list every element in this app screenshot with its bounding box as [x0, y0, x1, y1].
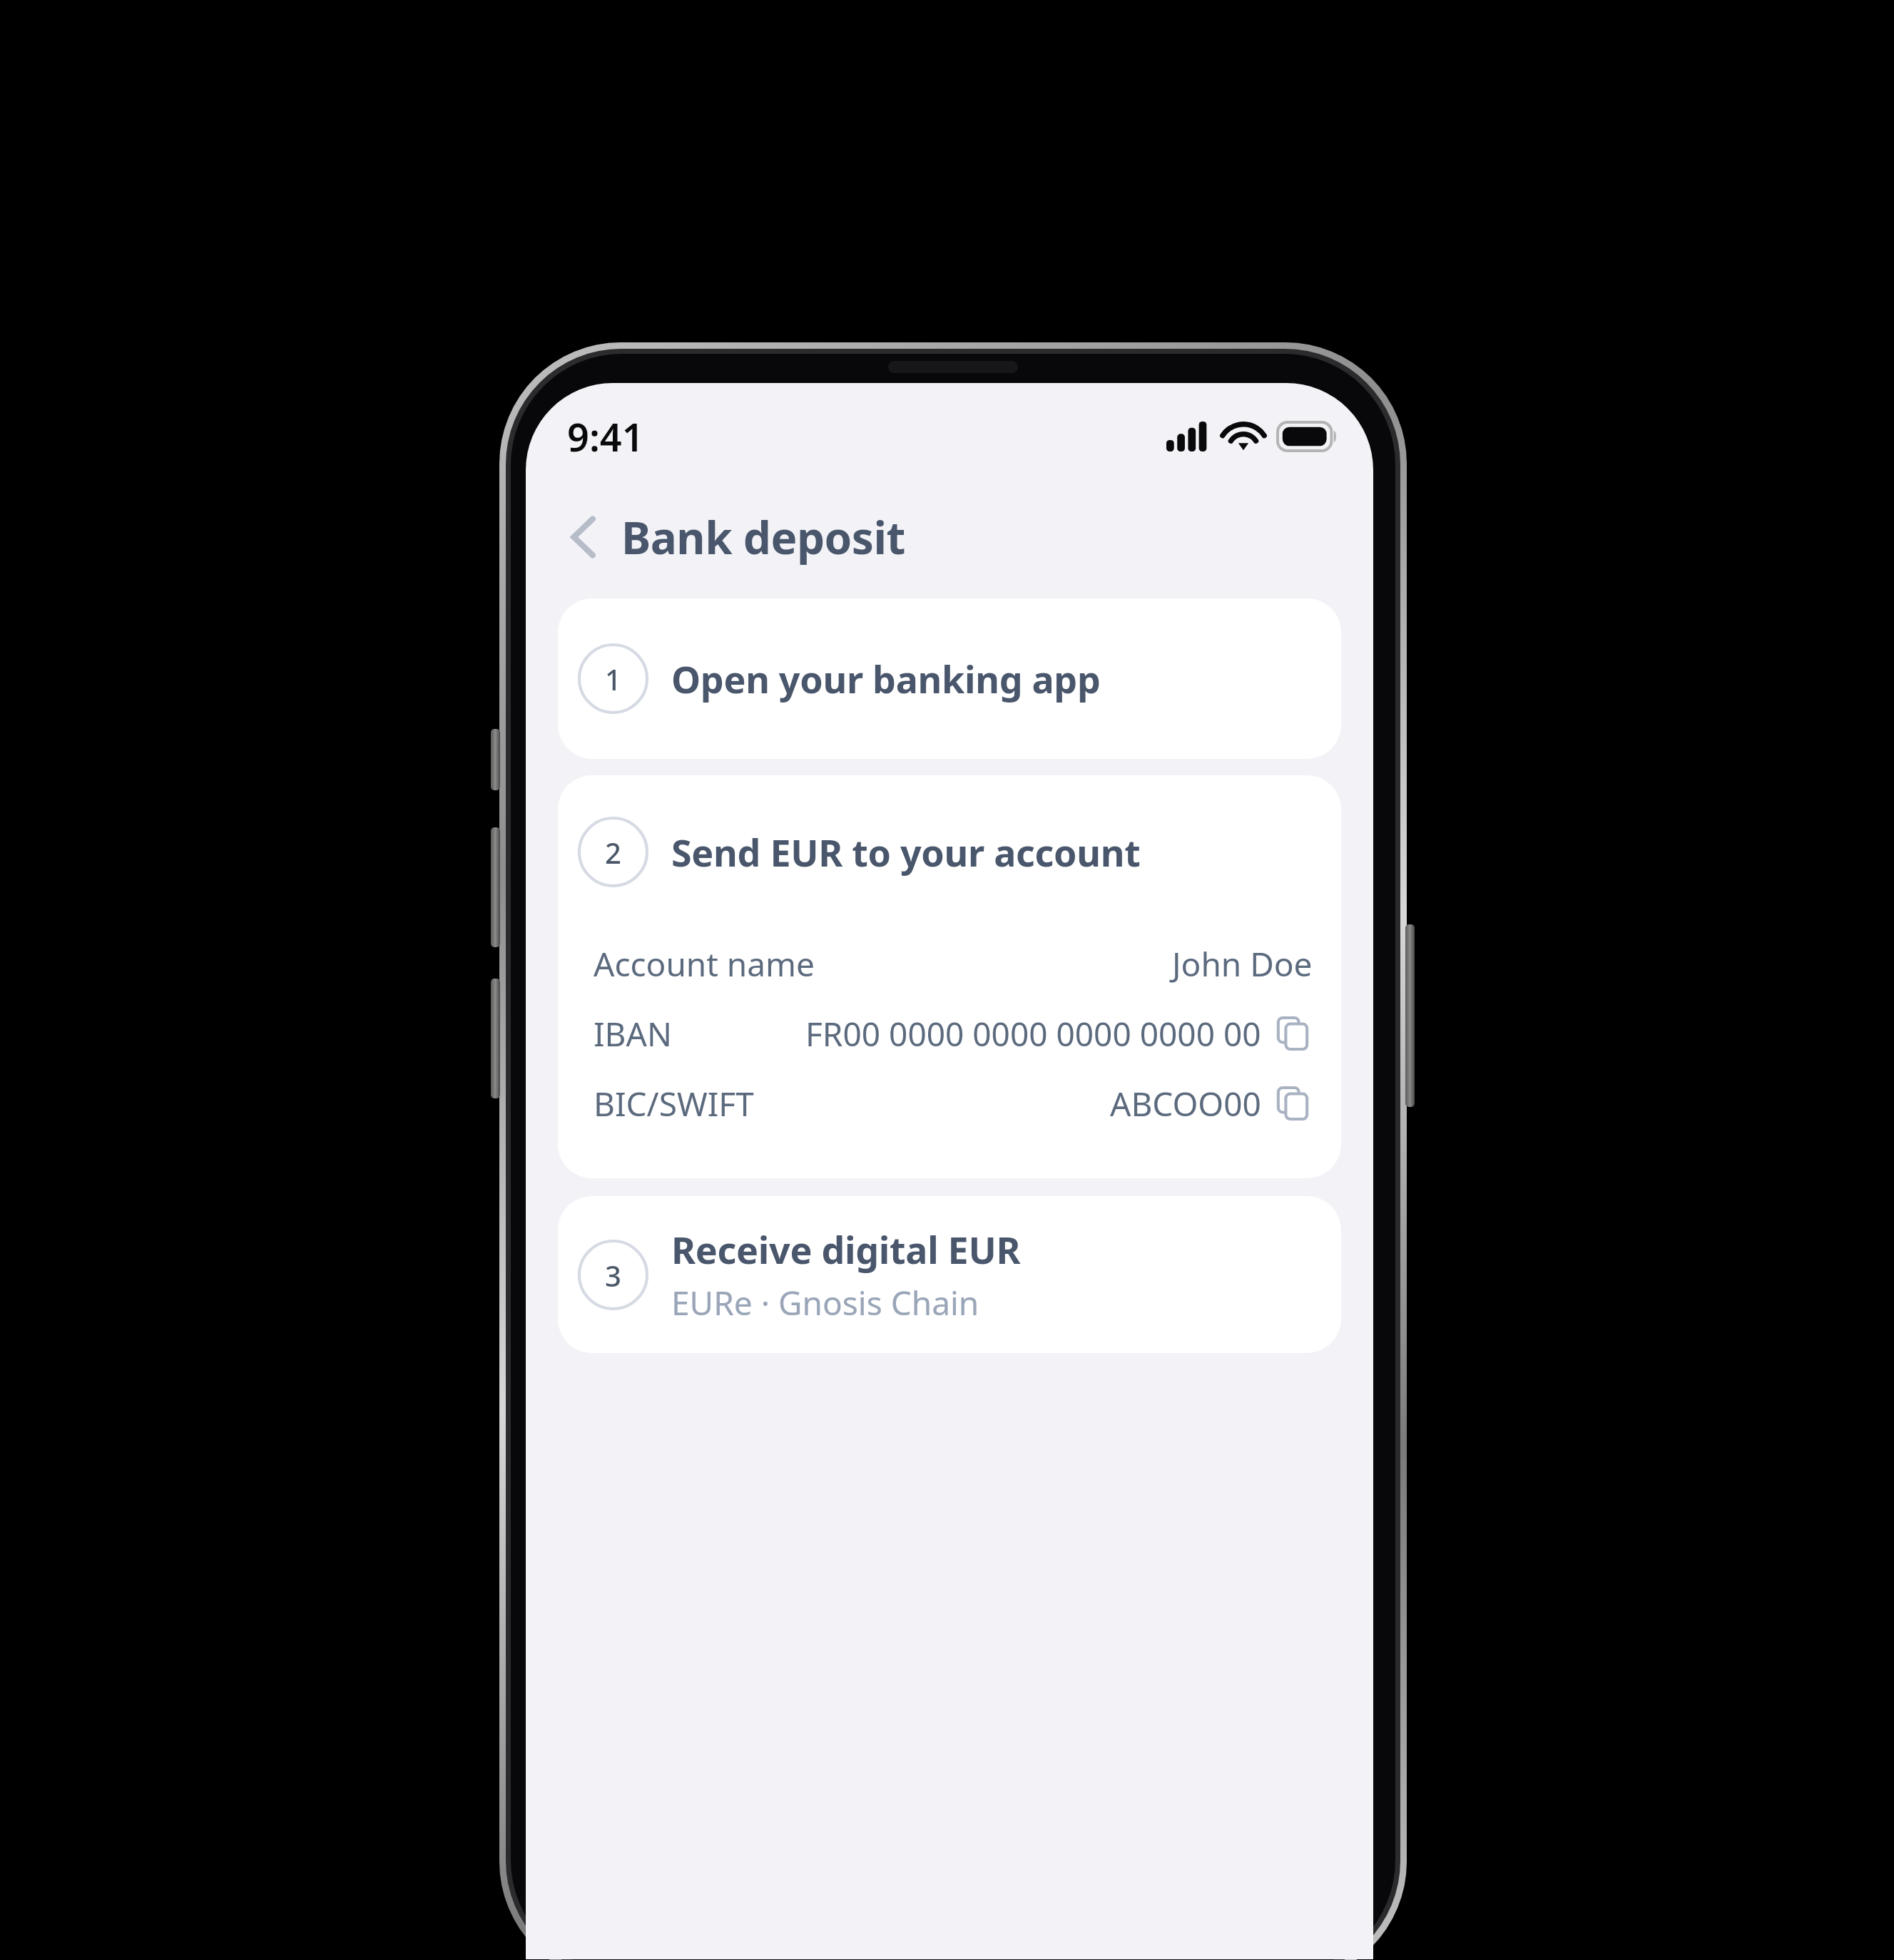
staticText: John Doe	[1172, 941, 1313, 986]
staticText: 3	[605, 1256, 621, 1295]
staticText: ABCOO00	[1110, 1081, 1261, 1126]
staticText: Open your banking app	[671, 653, 1101, 704]
button[interactable]: 1	[558, 598, 1341, 759]
staticText: Account name	[594, 941, 815, 986]
button[interactable]: Back	[556, 509, 611, 565]
staticText: Send EUR to your account	[671, 827, 1141, 877]
staticText: EURe · Gnosis Chain	[671, 1280, 979, 1325]
staticText: BIC/SWIFT	[594, 1081, 754, 1126]
staticText: IBAN	[594, 1011, 672, 1056]
staticText: Receive digital EUR	[671, 1224, 1021, 1275]
button[interactable]: Copy IBAN	[1273, 1014, 1313, 1053]
staticText: 1	[605, 660, 621, 698]
button[interactable]: 2	[558, 775, 1341, 1178]
button[interactable]: 3	[558, 1196, 1341, 1353]
staticText: 9:41	[567, 410, 644, 463]
staticText: Bank deposit	[621, 507, 905, 567]
button[interactable]: Copy BIC/SWIFT	[1273, 1083, 1313, 1123]
staticText: FR00 0000 0000 0000 0000 00	[805, 1011, 1261, 1056]
staticText: 2	[605, 833, 621, 872]
